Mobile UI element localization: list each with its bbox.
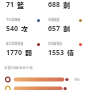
staticText: 本週強度: [48, 18, 60, 22]
staticText: 657: [48, 24, 61, 32]
staticText: 540: [6, 24, 19, 32]
button[interactable]: Intensity bar: [0, 75, 90, 84]
staticText: 顆: [25, 48, 32, 56]
staticText: 目前累積分: [48, 42, 63, 46]
button[interactable]: 71: [6, 0, 44, 14]
staticText: 本週訓練強度分佈: [4, 66, 33, 71]
button[interactable]: 目前累積分: [48, 42, 86, 56]
button[interactable]: 今日訓練量: [6, 18, 44, 32]
button[interactable]: 本週強度: [48, 18, 86, 32]
button[interactable]: 688: [48, 0, 86, 14]
staticText: 剩: [63, 0, 70, 10]
staticText: 累計消耗熱量: [6, 42, 24, 46]
button[interactable]: Intensity bar: [0, 84, 90, 90]
button[interactable]: 累計消耗熱量: [6, 42, 44, 56]
staticText: 71: [6, 0, 15, 10]
staticText: 籃: [17, 0, 24, 10]
staticText: 688: [48, 0, 61, 10]
staticText: 98%: [74, 78, 81, 82]
staticText: 值: [67, 48, 74, 56]
staticText: 1770: [6, 48, 23, 56]
staticText: 1553: [48, 48, 65, 56]
staticText: 今日訓練量: [6, 18, 21, 22]
staticText: 剩: [63, 24, 70, 32]
staticText: 次: [21, 24, 28, 32]
